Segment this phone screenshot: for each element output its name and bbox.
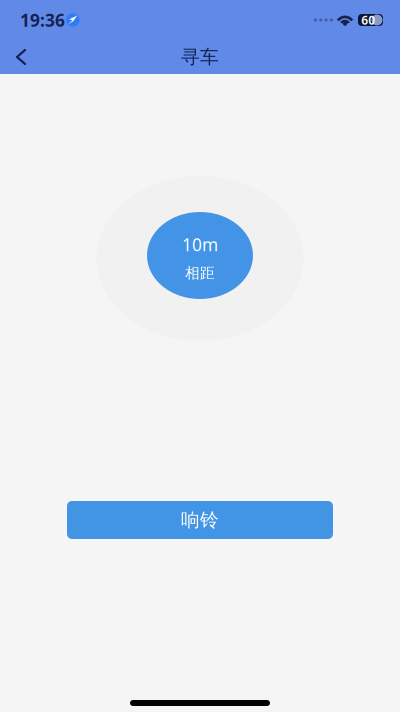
staticText: 相距 <box>185 264 215 282</box>
staticText: 寻车 <box>181 45 219 68</box>
button[interactable]: Back <box>0 40 38 74</box>
button[interactable]: 响铃 <box>67 501 333 539</box>
staticText: 19:36 <box>20 8 65 31</box>
staticText: 响铃 <box>181 508 219 531</box>
staticText: 60 <box>361 12 375 28</box>
staticText: 10m <box>182 233 218 256</box>
